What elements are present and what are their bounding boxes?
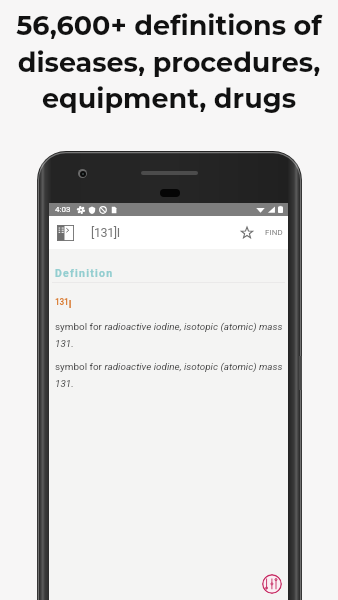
staticText: 56,600+ definitions of diseases, procedu… <box>0 9 338 114</box>
staticText: 4:03 <box>55 205 71 214</box>
staticText: symbol for radioactive iodine, isotopic … <box>55 321 286 349</box>
staticText: [131]I <box>91 225 120 240</box>
staticText: FIND <box>265 228 283 237</box>
button[interactable]: Filter settings <box>262 574 282 594</box>
staticText: Definition <box>55 267 114 279</box>
staticText: 131I <box>55 297 73 310</box>
button[interactable]: FIND <box>263 226 285 239</box>
button[interactable]: Open navigation <box>57 225 74 241</box>
staticText: symbol for radioactive iodine, isotopic … <box>55 361 286 389</box>
button[interactable]: Add to favorites <box>235 223 255 243</box>
